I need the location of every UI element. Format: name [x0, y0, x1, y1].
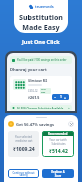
staticText: truemeds — [35, 4, 54, 9]
button[interactable]: You'll be paid ₹100 savings on this orde… — [12, 58, 70, 62]
button[interactable]: Continue without saving — [8, 169, 39, 178]
staticText: ₹261.5 — [28, 95, 40, 100]
staticText: medicine cart — [15, 139, 33, 143]
staticText: Substitution — [19, 13, 63, 23]
staticText: ₹1009.24 — [13, 146, 35, 153]
button[interactable]: − — [52, 94, 69, 100]
staticText: Substitutes — [51, 142, 66, 146]
button[interactable]: truemeds — [14, 0, 68, 33]
staticText: Made Easy — [22, 23, 60, 33]
button[interactable]: Recommended — [42, 131, 74, 157]
staticText: Dhanraj your cart — [10, 67, 47, 73]
button[interactable]: Close — [68, 121, 74, 127]
button[interactable]: Your selected — [8, 131, 39, 157]
button[interactable]: Glimisave M2 Forte Tablet — [10, 76, 72, 103]
staticText: Recommended — [48, 132, 68, 136]
button[interactable]: Replace & Save — [42, 169, 74, 178]
staticText: 15% OFF — [41, 88, 50, 94]
staticText: Glimisave M2 Forte Tablet — [28, 79, 51, 83]
staticText: Replace & Save — [51, 170, 65, 177]
staticText: ₹310.12 — [28, 89, 38, 93]
staticText: Continue without saving — [12, 171, 35, 177]
staticText: 56.50% Cheaper Substitute Available — [17, 107, 68, 109]
staticText: ₹514.42 — [49, 148, 68, 155]
staticText: > — [68, 107, 70, 109]
staticText: + — [64, 95, 67, 100]
staticText: You'll be paid ₹100 savings on this orde… — [17, 58, 67, 62]
staticText: Your selected — [15, 135, 32, 139]
staticText: − — [54, 95, 57, 100]
staticText: Just One Click — [22, 38, 60, 45]
staticText: Get 56.47% savings — [16, 122, 68, 127]
staticText: Your cart with — [49, 138, 67, 142]
button[interactable]: 56.50% Cheaper Substitute Available — [12, 107, 70, 109]
staticText: 1 — [60, 95, 62, 99]
